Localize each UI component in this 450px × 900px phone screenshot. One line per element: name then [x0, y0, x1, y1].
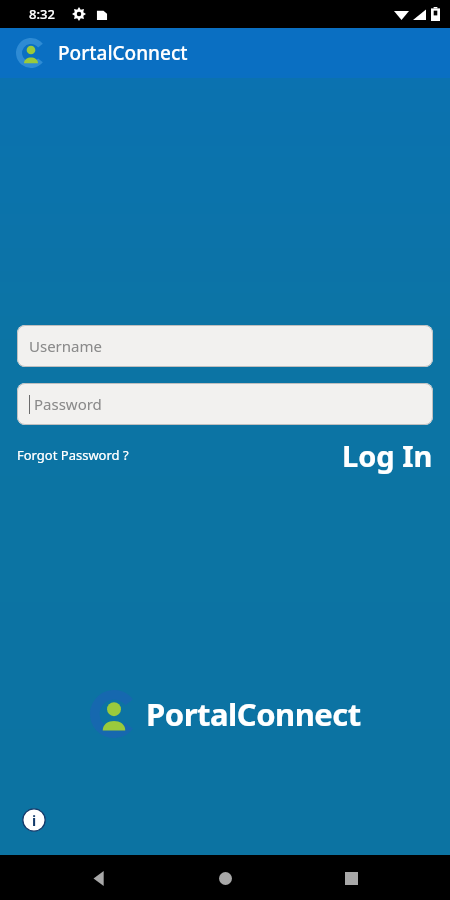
staticText: 8:32: [29, 5, 55, 23]
staticText: Password: [34, 394, 102, 414]
staticText: PortalConnect: [146, 693, 361, 735]
staticText: i: [32, 811, 37, 830]
button[interactable]: Log In: [342, 436, 433, 475]
button[interactable]: Back: [83, 862, 115, 894]
button[interactable]: Password: [17, 383, 433, 425]
staticText: Username: [29, 336, 102, 356]
button[interactable]: Recent apps: [335, 862, 367, 894]
button[interactable]: Forgot Password ?: [17, 446, 129, 464]
button[interactable]: Home: [209, 862, 241, 894]
staticText: PortalConnect: [58, 40, 188, 66]
button[interactable]: Information: [21, 807, 47, 833]
button[interactable]: Username: [17, 325, 433, 367]
